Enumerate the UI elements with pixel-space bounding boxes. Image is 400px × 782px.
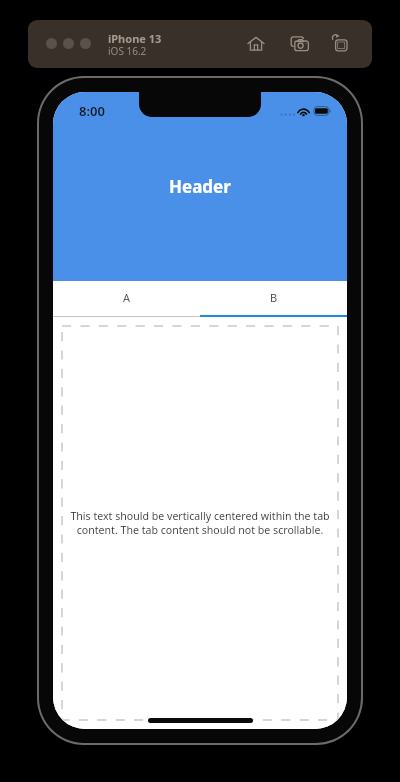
staticText: B	[270, 290, 278, 305]
button[interactable]: A	[53, 281, 200, 317]
staticText: A	[123, 290, 131, 305]
staticText: Header	[169, 175, 231, 198]
button[interactable]: B	[200, 281, 347, 317]
button[interactable]: Rotate	[330, 32, 354, 56]
staticText: 8:00	[79, 102, 105, 120]
staticText: iOS 16.2	[108, 44, 147, 58]
button[interactable]: Screenshot	[288, 32, 312, 56]
staticText: iPhone 13	[108, 31, 162, 46]
staticText: This text should be vertically centered …	[68, 509, 332, 537]
button[interactable]: Home	[244, 32, 268, 56]
